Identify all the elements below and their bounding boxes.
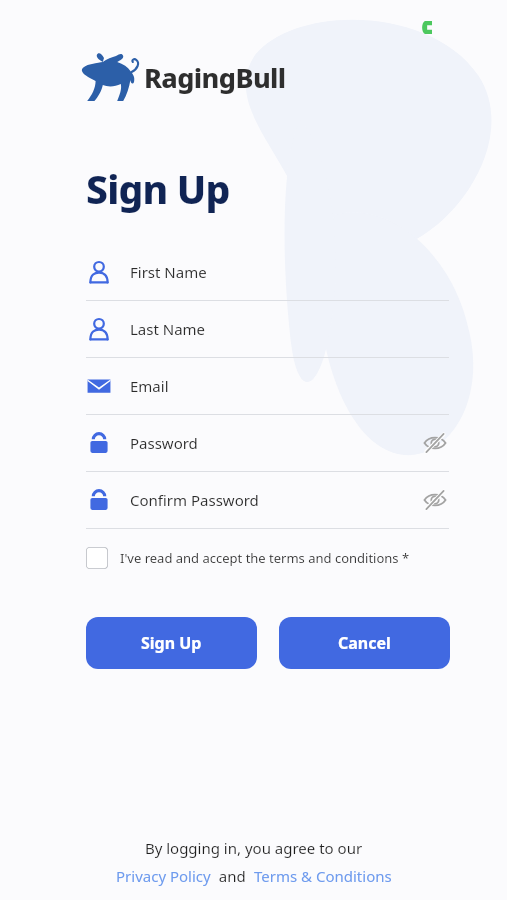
staticText: Cancel bbox=[338, 632, 391, 654]
staticText: RagingBull bbox=[144, 59, 286, 96]
button[interactable]: Confirm Password bbox=[0, 472, 507, 529]
staticText: Email bbox=[130, 376, 169, 396]
button[interactable]: Terms & Conditions bbox=[254, 866, 392, 886]
staticText: Confirm Password bbox=[130, 490, 259, 510]
staticText: Sign Up bbox=[86, 162, 230, 215]
button[interactable]: Privacy Policy bbox=[116, 866, 211, 886]
other: RagingBull logo bbox=[80, 52, 140, 102]
button[interactable]: First Name bbox=[0, 244, 507, 301]
button[interactable]: Sign Up bbox=[86, 617, 257, 669]
staticText: and bbox=[211, 866, 254, 886]
staticText: Last Name bbox=[130, 319, 206, 339]
button[interactable]: Show password bbox=[421, 486, 449, 514]
button[interactable]: I've read and accept the terms and condi… bbox=[86, 541, 410, 575]
button[interactable]: Email bbox=[0, 358, 507, 415]
button[interactable]: Password bbox=[0, 415, 507, 472]
staticText: Sign Up bbox=[141, 632, 202, 654]
staticText: Password bbox=[130, 433, 198, 453]
button[interactable]: Last Name bbox=[0, 301, 507, 358]
button[interactable]: Show password bbox=[421, 429, 449, 457]
staticText: By logging in, you agree to our bbox=[0, 838, 507, 858]
button[interactable]: Cancel bbox=[279, 617, 450, 669]
staticText: First Name bbox=[130, 262, 207, 282]
staticText: I've read and accept the terms and condi… bbox=[120, 549, 410, 567]
